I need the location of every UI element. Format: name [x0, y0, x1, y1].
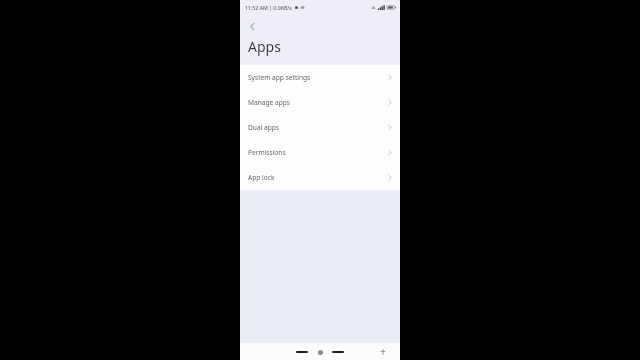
- staticText: System app settings: [248, 73, 311, 82]
- button[interactable]: System app settings: [240, 65, 400, 90]
- button[interactable]: Manage apps: [240, 90, 400, 115]
- staticText: Manage apps: [248, 98, 290, 107]
- button[interactable]: Dual apps: [240, 115, 400, 140]
- button[interactable]: Permissions: [240, 140, 400, 165]
- button[interactable]: Pointer: [378, 347, 388, 357]
- button[interactable]: Back: [242, 16, 262, 36]
- staticText: 11:52 AM | 0.0KB/s: [245, 4, 292, 11]
- staticText: Dual apps: [248, 123, 279, 132]
- staticText: Apps: [248, 37, 281, 56]
- button[interactable]: Recents: [330, 347, 346, 357]
- staticText: App lock: [248, 173, 275, 182]
- button[interactable]: App lock: [240, 165, 400, 190]
- button[interactable]: Back: [294, 347, 310, 357]
- staticText: Permissions: [248, 148, 286, 157]
- button[interactable]: Home: [314, 346, 326, 358]
